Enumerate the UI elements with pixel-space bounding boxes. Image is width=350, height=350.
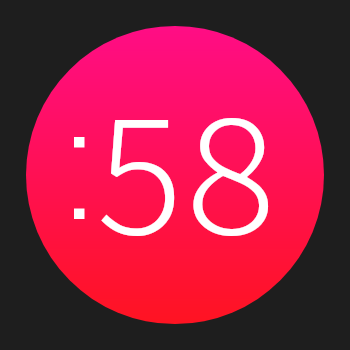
staticText: 8 <box>186 52 276 285</box>
staticText: 5 <box>97 52 183 285</box>
button[interactable]: Timer 58 seconds <box>26 26 324 324</box>
